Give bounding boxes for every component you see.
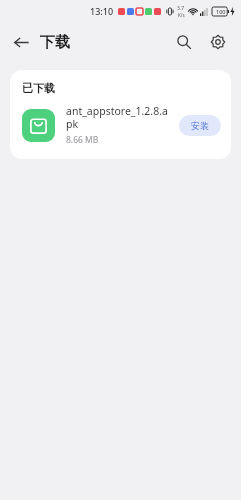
staticText: 3.7	[177, 5, 185, 12]
button[interactable]: Back	[6, 27, 36, 57]
staticText: 安装	[191, 120, 209, 131]
staticText: 100	[216, 8, 226, 15]
staticText: 13:10	[90, 5, 114, 17]
staticText: K/s	[178, 12, 185, 18]
staticText: 已下载	[22, 81, 55, 95]
staticText: 8.66 MB	[66, 134, 99, 146]
button[interactable]: Settings	[203, 27, 233, 57]
button[interactable]: ant_appstore_1.2.8.apk	[10, 95, 231, 159]
staticText: ant_appstore_1.2.8.apk	[66, 104, 173, 131]
staticText: 下载	[40, 33, 70, 52]
button[interactable]: 安装	[179, 115, 221, 136]
button[interactable]: Search	[169, 27, 199, 57]
